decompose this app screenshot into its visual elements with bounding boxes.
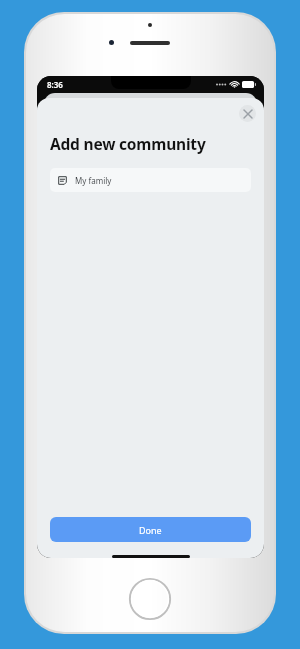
- button[interactable]: Done: [50, 517, 251, 542]
- staticText: Add new community: [50, 133, 206, 154]
- staticText: 8:36: [47, 79, 63, 90]
- button[interactable]: Close: [239, 105, 256, 122]
- staticText: Done: [139, 524, 162, 536]
- button[interactable]: My family: [50, 168, 251, 192]
- staticText: My family: [75, 175, 112, 186]
